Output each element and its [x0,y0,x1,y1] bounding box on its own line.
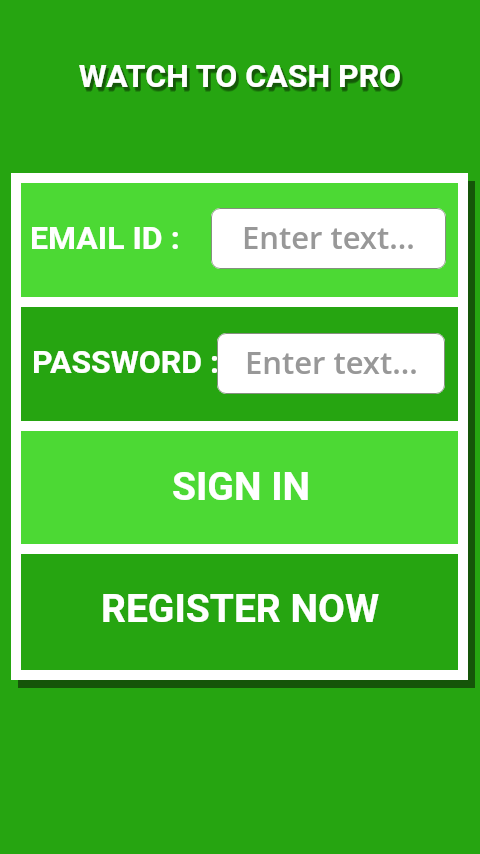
staticText: WATCH TO CASH PRO [0,57,480,95]
button[interactable]: REGISTER NOW [21,554,458,670]
staticText: SIGN IN [172,464,311,510]
staticText: REGISTER NOW [101,586,380,632]
staticText: WATCH TO CASH PRO [2,62,480,100]
staticText: Enter text... [242,216,415,258]
button[interactable]: SIGN IN [21,431,458,544]
button[interactable]: Password input field [217,333,445,394]
staticText: WATCH TO CASH PRO [3,60,480,98]
staticText: WATCH TO CASH PRO [2,60,480,98]
staticText: EMAIL ID : [30,219,180,257]
staticText: Enter text... [245,341,418,383]
staticText: WATCH TO CASH PRO [2,61,480,99]
staticText: WATCH TO CASH PRO [3,61,480,99]
button[interactable]: Email ID input field [211,208,446,269]
staticText: PASSWORD : [32,343,220,381]
staticText: WATCH TO CASH PRO [1,60,480,98]
